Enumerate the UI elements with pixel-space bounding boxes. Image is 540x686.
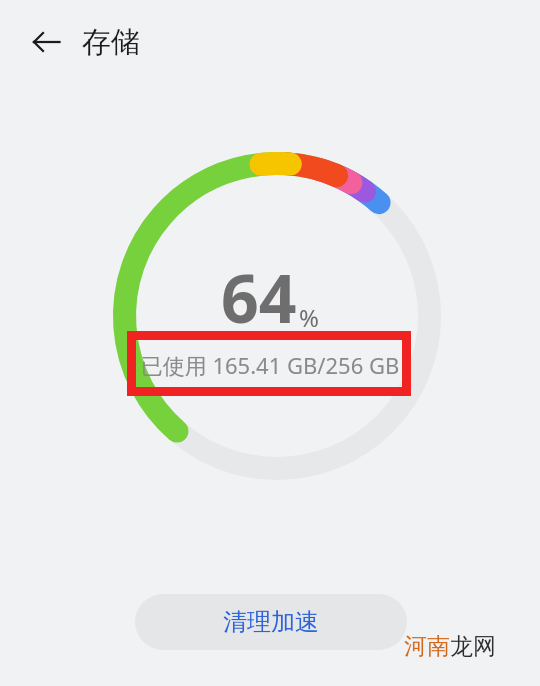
staticText: % — [299, 301, 319, 334]
staticText: 龙网 — [450, 632, 496, 661]
staticText: 存储 — [82, 24, 140, 61]
staticText: 64 — [221, 252, 297, 342]
staticText: 河南 — [404, 632, 450, 661]
staticText: 已使用 165.41 GB/256 GB — [0, 350, 540, 380]
button[interactable]: 清理加速 — [135, 594, 407, 650]
button[interactable]: Back — [22, 18, 70, 66]
staticText: 清理加速 — [223, 607, 319, 637]
